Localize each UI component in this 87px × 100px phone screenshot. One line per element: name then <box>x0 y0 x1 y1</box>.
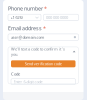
staticText: Code <box>11 71 20 77</box>
staticText: * <box>44 5 47 12</box>
button[interactable]: Send verification code <box>11 60 75 67</box>
button[interactable]: user@domain.com <box>8 34 78 40</box>
button[interactable]: 000 000 0000 <box>43 14 78 21</box>
staticText: Send verification code <box>25 61 62 66</box>
staticText: * <box>43 25 46 32</box>
staticText: Enter 6-digit code <box>13 79 42 84</box>
staticText: Email address <box>8 25 42 32</box>
staticText: +1 (US) <box>10 15 22 20</box>
staticText: 000 000 0000 <box>46 15 68 20</box>
button[interactable]: Collapse <box>73 50 75 53</box>
button[interactable]: +1 (US) <box>8 14 41 21</box>
staticText: user@domain.com <box>10 34 44 40</box>
staticText: We'll text a code to confirm it's you. <box>11 46 65 57</box>
staticText: Phone number <box>8 5 43 12</box>
button[interactable]: Enter 6-digit code <box>11 79 75 85</box>
